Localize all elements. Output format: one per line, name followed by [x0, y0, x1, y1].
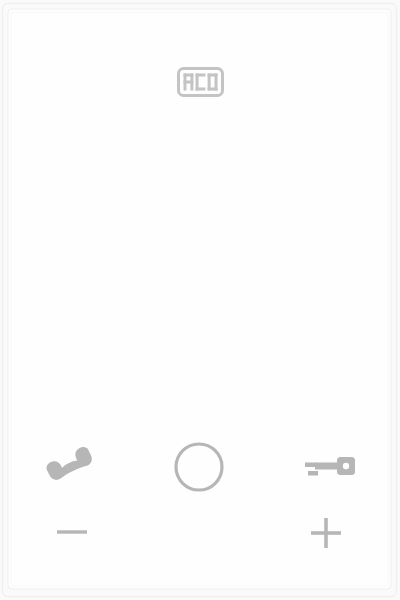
button[interactable]: Volume down	[43, 509, 101, 555]
button[interactable]: Menu	[168, 436, 230, 498]
button[interactable]: Call	[28, 434, 110, 496]
button[interactable]: Volume up	[297, 506, 355, 560]
button[interactable]: Door opener	[296, 440, 366, 494]
other: ACO logo	[177, 67, 224, 97]
